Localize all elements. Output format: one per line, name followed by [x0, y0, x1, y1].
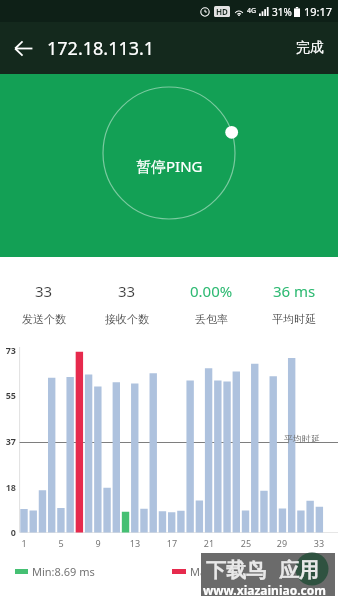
staticText: Min:8.69 ms [32, 564, 95, 579]
staticText: 1 [14, 537, 34, 549]
staticText: 0.00% [190, 281, 233, 301]
staticText: 18 [0, 481, 16, 493]
staticText: www.xiazainiao.com [203, 582, 326, 598]
staticText: 完成 [296, 39, 324, 57]
staticText: 9 [88, 537, 108, 549]
staticText: 17 [162, 537, 182, 549]
staticText: 21 [199, 537, 219, 549]
button[interactable]: 33 [4, 257, 84, 326]
staticText: 55 [0, 389, 16, 401]
staticText: 33 [118, 281, 136, 301]
button[interactable]: 0.00% [171, 257, 251, 326]
staticText: 25 [236, 537, 256, 549]
staticText: 接收个数 [105, 312, 149, 326]
staticText: 33 [35, 281, 53, 301]
staticText: 172.18.113.1 [47, 36, 155, 61]
staticText: 暂停PING [136, 156, 203, 176]
staticText: Max:73 ms [190, 564, 246, 579]
staticText: 37 [0, 435, 16, 447]
staticText: 平均时延 [272, 312, 316, 326]
button[interactable]: Back [6, 31, 40, 65]
staticText: 丢包率 [195, 312, 228, 326]
staticText: 应用 [279, 558, 319, 583]
button[interactable]: 33 [87, 257, 167, 326]
staticText: 下载鸟 [206, 558, 266, 583]
staticText: 13 [125, 537, 145, 549]
staticText: 4G [247, 6, 257, 16]
staticText: 73 [0, 344, 16, 356]
button[interactable]: 暂停PING [0, 74, 338, 257]
staticText: 发送个数 [22, 312, 66, 326]
staticText: 29 [272, 537, 292, 549]
button[interactable]: 完成 [282, 27, 338, 69]
staticText: 19:17 [304, 4, 333, 19]
staticText: 5 [51, 537, 71, 549]
staticText: HD [216, 6, 228, 17]
staticText: 33 [309, 537, 329, 549]
staticText: 0 [0, 526, 16, 538]
staticText: 36 ms [273, 281, 316, 301]
staticText: 平均时延 [284, 433, 320, 444]
staticText: 31% [272, 5, 292, 19]
button[interactable]: 36 ms [254, 257, 334, 326]
